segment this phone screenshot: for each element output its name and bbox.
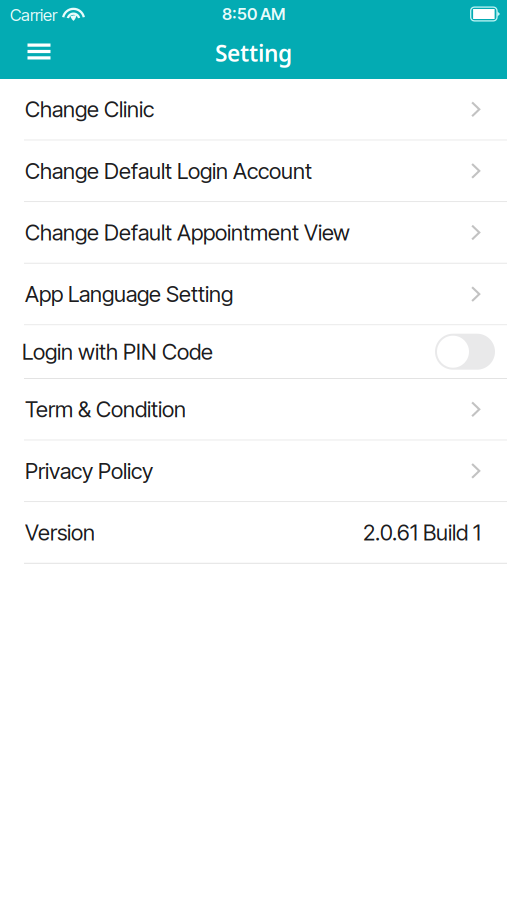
button[interactable]: Login with PIN Code <box>435 334 495 370</box>
button[interactable]: Change Default Appointment View <box>0 202 507 264</box>
button[interactable]: Change Clinic <box>0 79 507 141</box>
staticText: 8:50 AM <box>222 4 285 24</box>
staticText: App Language Setting <box>25 281 233 307</box>
button[interactable]: App Language Setting <box>0 264 507 325</box>
staticText: 2.0.61 Build 1 <box>363 519 481 546</box>
button[interactable]: Term & Condition <box>0 379 507 441</box>
staticText: Login with PIN Code <box>22 338 213 365</box>
button[interactable]: Menu <box>13 29 65 79</box>
staticText: Setting <box>215 38 292 68</box>
staticText: Change Default Login Account <box>25 158 312 184</box>
button[interactable]: Change Default Login Account <box>0 141 507 202</box>
staticText: Privacy Policy <box>25 458 153 484</box>
staticText: Change Clinic <box>25 96 154 123</box>
staticText: Term & Condition <box>25 396 186 423</box>
staticText: Version <box>25 519 95 546</box>
button[interactable]: Privacy Policy <box>0 441 507 502</box>
staticText: Change Default Appointment View <box>25 219 350 246</box>
staticText: Carrier <box>10 5 57 25</box>
